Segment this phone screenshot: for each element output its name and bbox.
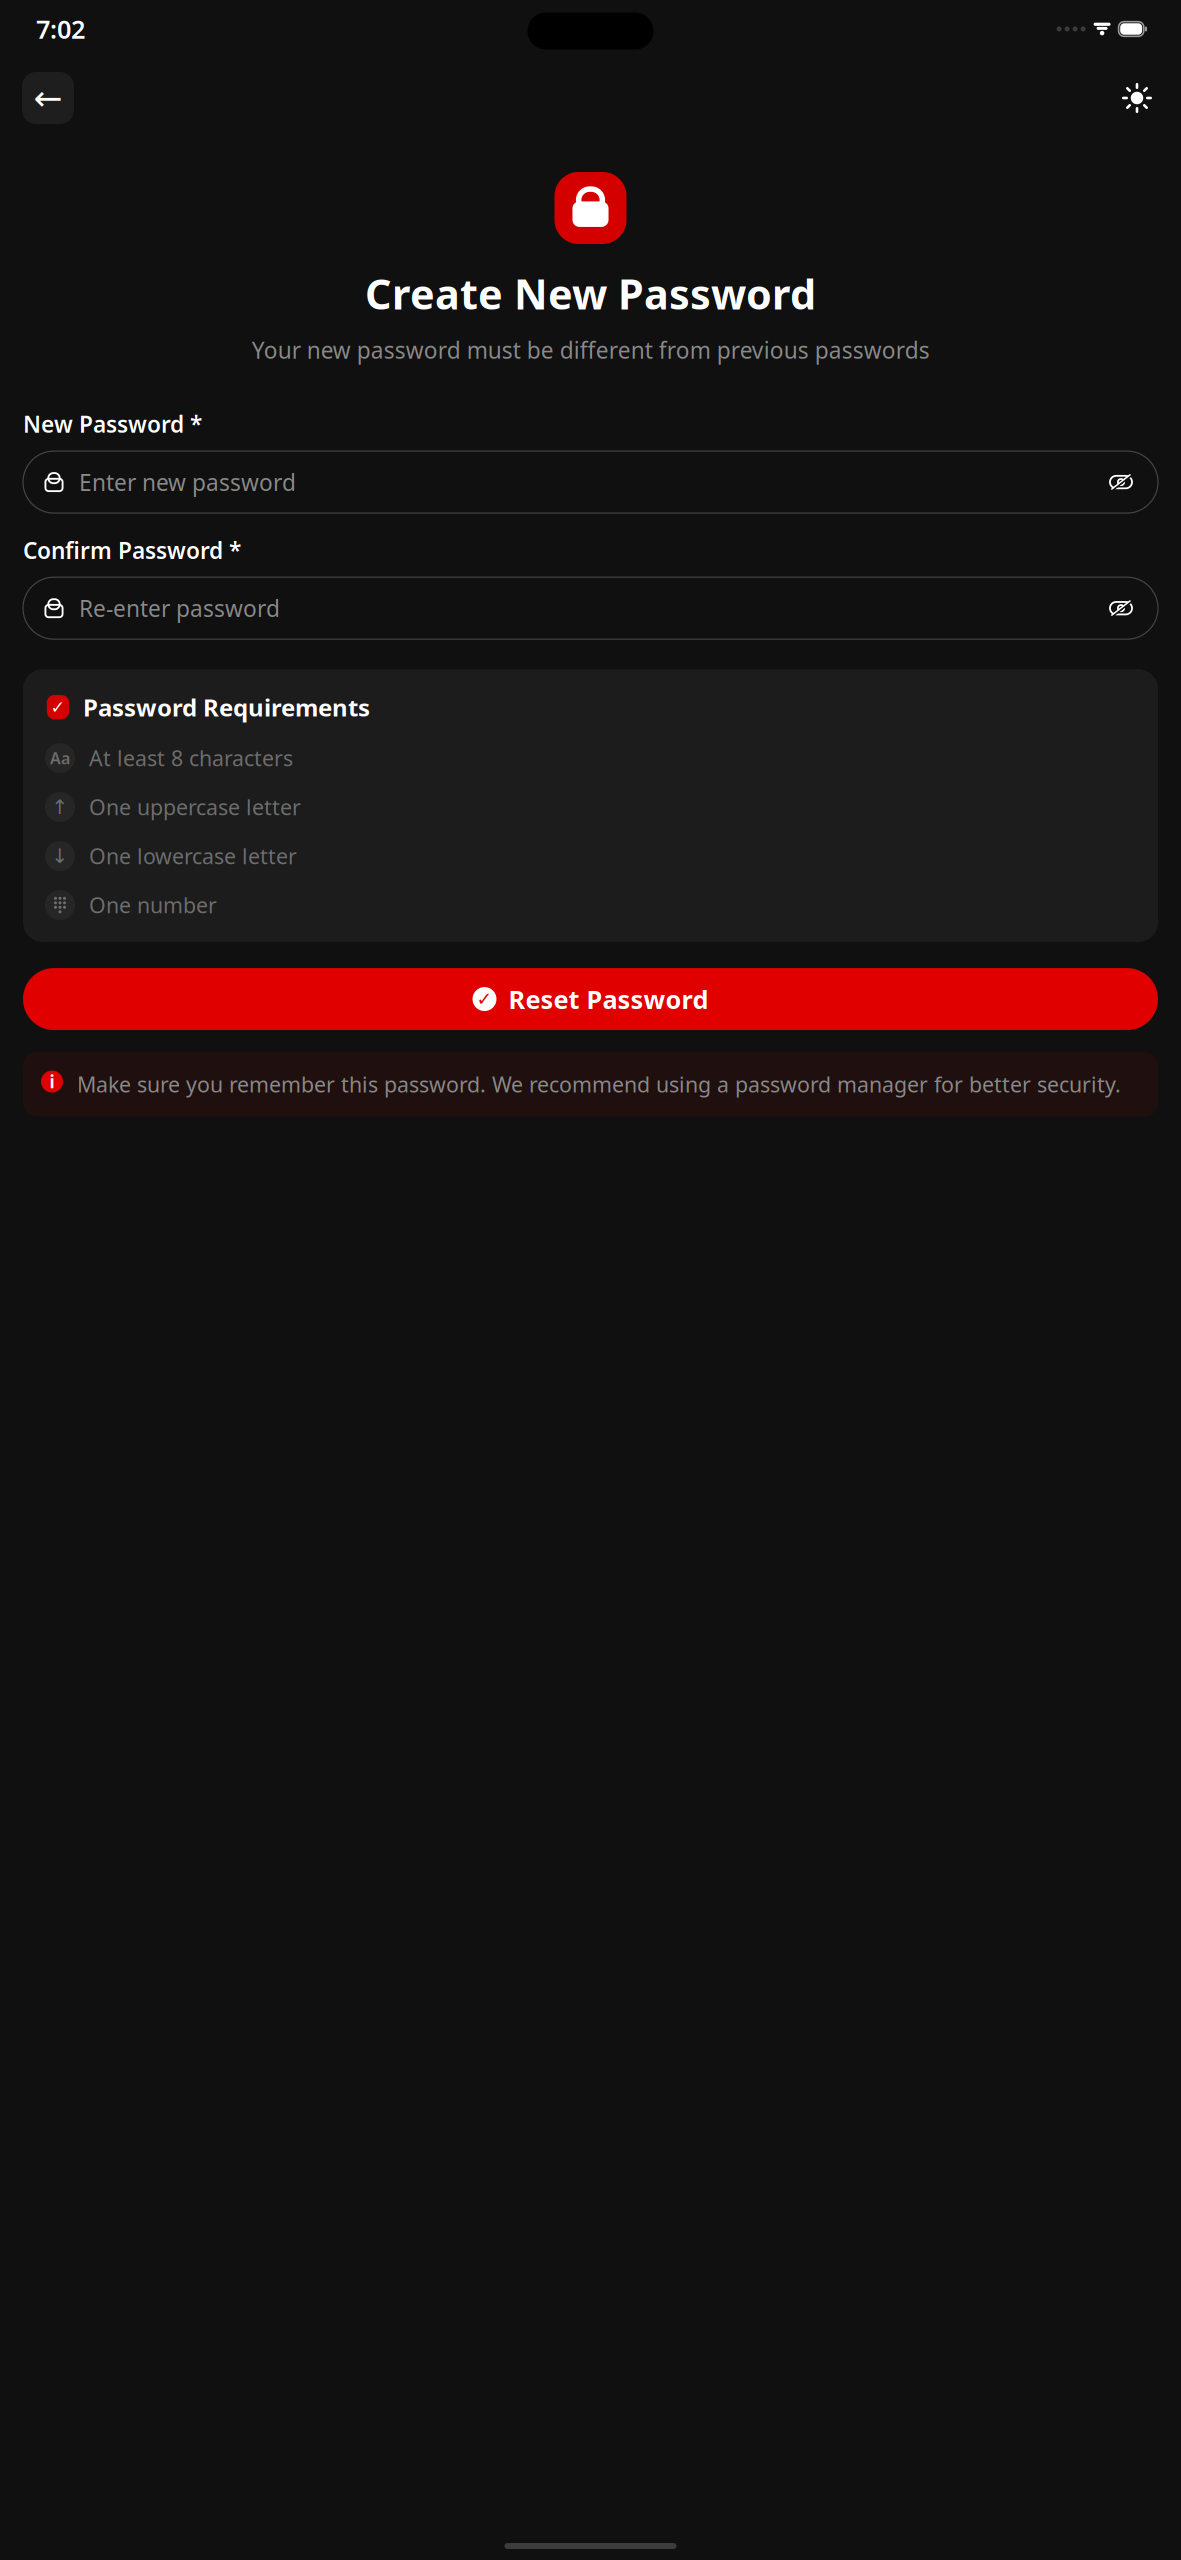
staticText: Re-enter password [79,593,280,623]
staticText: Reset Password [508,982,708,1016]
staticText: Enter new password [79,467,296,497]
staticText: Confirm Password * [23,535,241,565]
staticText: ✓ [50,697,65,717]
staticText: Password Requirements [83,691,370,723]
staticText: ↓ [51,845,68,867]
button[interactable]: Back [22,72,74,124]
button[interactable]: Show password [1104,591,1138,625]
button[interactable]: Switch to light mode [1115,76,1159,120]
staticText: One number [89,891,217,919]
button[interactable]: Show password [1104,465,1138,499]
staticText: ✓ [476,988,492,1010]
staticText: ← [33,78,62,118]
staticText: ↑ [51,796,68,818]
staticText: 7:02 [36,12,85,46]
staticText: Create New Password [365,266,816,321]
staticText: Your new password must be different from… [251,335,929,365]
staticText: Make sure you remember this password. We… [77,1070,1121,1098]
staticText: At least 8 characters [89,744,293,772]
staticText: i [49,1070,54,1093]
staticText: One lowercase letter [89,842,297,870]
staticText: Aa [50,747,70,769]
staticText: One uppercase letter [89,793,301,821]
button[interactable]: ✓ [23,968,1158,1030]
staticText: New Password * [23,409,202,439]
